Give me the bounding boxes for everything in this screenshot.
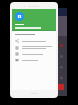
button[interactable] bbox=[12, 9, 56, 31]
other: Item action bbox=[15, 46, 19, 50]
button[interactable]: Item action bbox=[12, 38, 56, 44]
button[interactable]: Item action bbox=[12, 44, 56, 51]
button[interactable]: Item action bbox=[12, 57, 56, 63]
other: Item action bbox=[15, 58, 19, 62]
other: Item action bbox=[15, 39, 19, 43]
button[interactable]: Compose bbox=[58, 84, 64, 90]
button[interactable]: Item action bbox=[12, 51, 56, 57]
other: Item action bbox=[15, 52, 19, 56]
